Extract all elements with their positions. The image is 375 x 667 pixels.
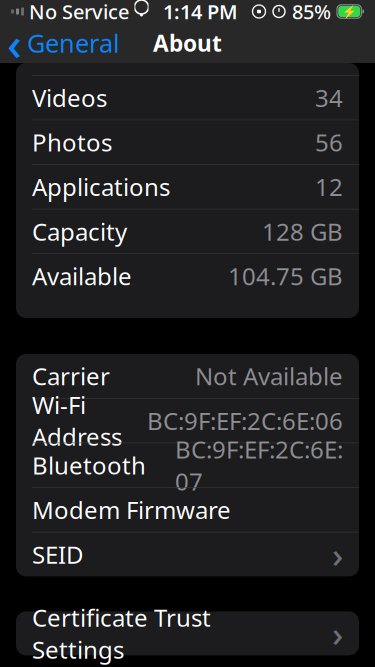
button[interactable]: Available (16, 254, 359, 298)
staticText: SEID (32, 538, 84, 570)
staticText: 85% (292, 0, 331, 25)
staticText: Capacity (32, 215, 127, 247)
staticText: ‹ (7, 13, 22, 73)
staticText: 1:14 PM (163, 0, 238, 25)
staticText: 128 GB (262, 215, 343, 247)
staticText: 56 (315, 126, 343, 158)
button[interactable]: Wi-Fi Address (16, 399, 359, 443)
button[interactable]: Videos (16, 76, 359, 120)
staticText: Photos (32, 126, 112, 158)
button[interactable]: Modem Firmware (16, 488, 359, 532)
button[interactable]: Carrier (16, 354, 359, 399)
button[interactable]: Photos (16, 120, 359, 165)
staticText: 104.75 GB (228, 260, 343, 292)
staticText: 12 (315, 171, 343, 203)
staticText: › (332, 610, 343, 656)
staticText: BC:9F:EF:2C:6E:07 (175, 433, 343, 497)
button[interactable]: Capacity (16, 209, 359, 254)
staticText: Certificate Trust Settings (32, 601, 211, 665)
staticText: General (27, 26, 120, 60)
button[interactable]: SEID (16, 532, 359, 576)
staticText: 34 (315, 82, 343, 114)
button[interactable]: Bluetooth (16, 443, 359, 488)
button[interactable]: Applications (16, 165, 359, 209)
staticText: › (332, 531, 343, 577)
staticText: Wi-Fi Address (32, 389, 122, 452)
staticText: Available (32, 260, 132, 292)
staticText: About (153, 28, 222, 58)
staticText: Videos (32, 82, 107, 114)
staticText: No Service (29, 0, 129, 25)
staticText: Modem Firmware (32, 494, 231, 526)
staticText: Not Available (195, 360, 343, 392)
staticText: Carrier (32, 360, 110, 392)
staticText: Applications (32, 171, 170, 203)
button[interactable]: Certificate Trust Settings (16, 611, 359, 655)
staticText: BC:9F:EF:2C:6E:06 (147, 405, 343, 437)
button[interactable]: ‹ (0, 20, 120, 66)
staticText: ⚡ (342, 5, 357, 18)
staticText: Bluetooth (32, 449, 146, 481)
